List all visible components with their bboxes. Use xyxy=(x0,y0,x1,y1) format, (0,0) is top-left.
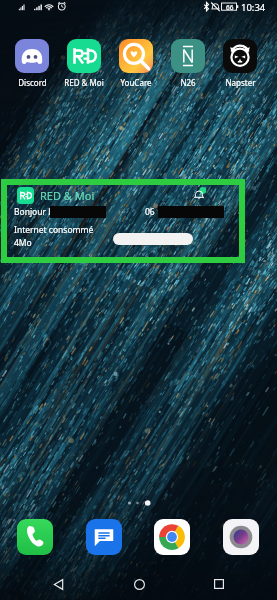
button[interactable]: RED & Moi xyxy=(1,179,245,263)
button[interactable]: RED & Moi xyxy=(58,39,110,88)
staticText: Bonjour l xyxy=(14,206,51,218)
button[interactable]: Camera xyxy=(223,519,259,555)
button[interactable]: Back xyxy=(36,568,80,600)
button[interactable]: Napster xyxy=(214,39,266,88)
button[interactable]: N26 xyxy=(162,39,214,88)
staticText: 10:34 xyxy=(241,1,266,14)
staticText: Internet consommé xyxy=(14,224,94,236)
button[interactable]: Notifications xyxy=(192,186,208,202)
staticText: Napster xyxy=(225,77,256,88)
staticText: RED & Moi xyxy=(40,188,95,203)
staticText: 66 xyxy=(226,3,234,11)
staticText: YouCare xyxy=(120,77,152,88)
button[interactable]: Messages xyxy=(86,519,122,555)
staticText: Discord xyxy=(18,77,47,88)
staticText: 06 xyxy=(145,206,155,218)
staticText: 4Mo xyxy=(14,237,32,249)
staticText: N26 xyxy=(180,77,196,88)
button[interactable]: Discord xyxy=(6,39,58,88)
staticText: RED & Moi xyxy=(64,77,104,88)
button[interactable]: Chrome xyxy=(154,519,190,555)
button[interactable]: Phone xyxy=(17,519,53,555)
button[interactable]: Recent apps xyxy=(197,568,241,600)
button[interactable]: Home xyxy=(117,568,161,600)
button[interactable]: YouCare xyxy=(110,39,162,88)
